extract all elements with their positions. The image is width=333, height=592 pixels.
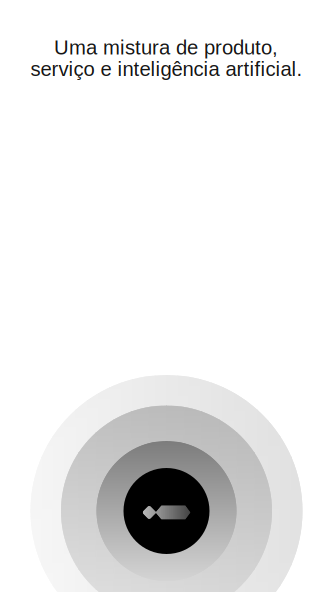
staticText: serviço e inteligência artificial. [30, 58, 302, 80]
staticText: Uma mistura de produto, [54, 36, 278, 59]
